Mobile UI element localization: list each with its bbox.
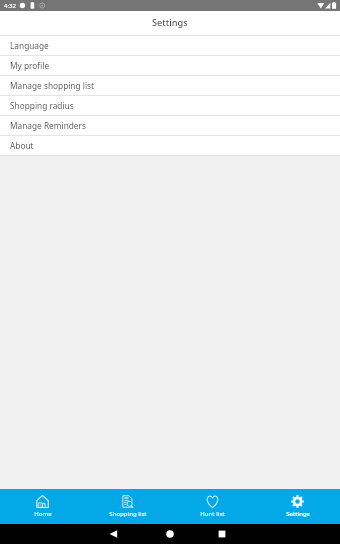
button[interactable]: Settings (255, 489, 340, 524)
staticText: About (10, 140, 34, 151)
staticText: 4:32 (4, 2, 16, 10)
staticText: Language (10, 40, 49, 51)
button[interactable]: Hunt list (170, 489, 255, 524)
button[interactable]: Manage shopping list (0, 76, 340, 95)
button[interactable]: About (0, 136, 340, 155)
staticText: Shopping radius (10, 100, 74, 111)
staticText: Manage shopping list (10, 80, 95, 91)
staticText: My profile (10, 60, 50, 71)
staticText: Settings (152, 16, 188, 29)
button[interactable]: Back (108, 527, 120, 541)
button[interactable]: Language (0, 36, 340, 55)
button[interactable]: Recent apps (216, 527, 228, 541)
staticText: Manage Reminders (10, 120, 86, 131)
staticText: Hunt list (200, 510, 225, 518)
staticText: Shopping list (109, 510, 147, 518)
button[interactable]: Manage Reminders (0, 116, 340, 135)
staticText: Home (34, 510, 52, 518)
staticText: Settings (286, 510, 310, 518)
button[interactable]: Home (0, 489, 85, 524)
button[interactable]: My profile (0, 56, 340, 75)
button[interactable]: Shopping radius (0, 96, 340, 115)
button[interactable]: Shopping list (85, 489, 170, 524)
button[interactable]: Home (164, 527, 176, 541)
